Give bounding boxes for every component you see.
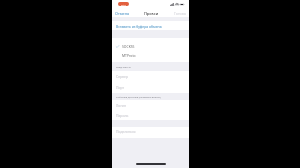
staticText: Логин <box>116 103 127 108</box>
staticText: УЧЁТНЫЕ ДАННЫЕ (НЕОБЯЗАТЕЛЬНО) <box>116 95 161 98</box>
staticText: MTProto <box>122 53 136 58</box>
staticText: 9:41 <box>121 3 126 6</box>
button[interactable]: Поделиться <box>112 127 189 138</box>
button[interactable]: Вставить из буфера обмена <box>112 21 189 30</box>
staticText: СОЕДИНЕНИЕ <box>116 66 131 69</box>
button[interactable]: Порт <box>112 82 189 93</box>
button[interactable]: Отмена <box>112 8 133 17</box>
button[interactable]: Сервер <box>112 71 189 82</box>
button[interactable]: MTProto <box>112 50 189 62</box>
staticText: Прокси <box>144 11 159 16</box>
staticText: SOCKS5 <box>122 44 135 49</box>
button[interactable]: Пароль <box>112 110 189 120</box>
staticText: Отмена <box>115 11 130 16</box>
staticText: Готово <box>174 11 187 16</box>
staticText: Сервер <box>116 74 128 79</box>
staticText: Поделиться <box>116 129 136 134</box>
staticText: Вставить из буфера обмена <box>116 24 162 29</box>
button[interactable]: SOCKS5 <box>112 38 189 50</box>
button[interactable]: Готово <box>171 8 189 17</box>
staticText: Пароль <box>116 113 129 118</box>
button[interactable]: Логин <box>112 100 189 110</box>
staticText: Порт <box>116 85 125 90</box>
